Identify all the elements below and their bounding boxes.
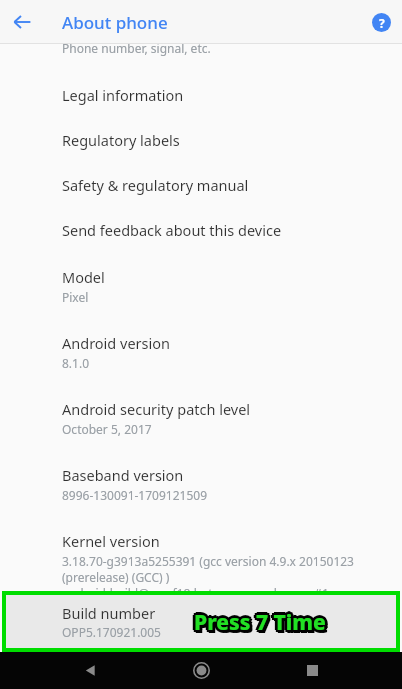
staticText: Android version (62, 333, 170, 353)
staticText: android-build@wpef18.hot.corp.google.com… (62, 585, 329, 601)
button[interactable]: Send feedback about this device (0, 207, 402, 252)
button[interactable]: Back (0, 0, 44, 44)
staticText: Press 7 Time (194, 611, 326, 640)
staticText: Press 7 Time (196, 608, 328, 637)
staticText: Press 7 Time (197, 611, 329, 640)
staticText: Press 7 Time (197, 608, 329, 637)
staticText: Pixel (62, 289, 89, 305)
staticText: Press 7 Time (196, 610, 328, 639)
staticText: Wed Sep 20 20:50:09 UTC 2017 (62, 601, 235, 617)
staticText: Phone number, signal, etc. (62, 40, 211, 56)
staticText: Press 7 Time (194, 606, 326, 635)
button[interactable]: Android security patch level (0, 390, 402, 446)
staticText: Kernel version (62, 531, 160, 551)
staticText: 8996-130091-1709121509 (62, 487, 208, 503)
staticText: Press 7 Time (194, 610, 326, 639)
staticText: Legal information (62, 85, 184, 105)
button[interactable]: Baseband version (0, 456, 402, 512)
staticText: Press 7 Time (194, 608, 326, 637)
staticText: Send feedback about this device (62, 220, 282, 240)
button[interactable]: Regulatory labels (0, 117, 402, 162)
staticText: OPP5.170921.005 (62, 624, 161, 640)
button[interactable]: Help (362, 2, 400, 42)
staticText: 3.18.70-g3913a5255391 (gcc version 4.9.x… (62, 553, 354, 569)
staticText: Press 7 Time (191, 608, 323, 637)
button[interactable]: Safety & regulatory manual (0, 162, 402, 207)
staticText: Press 7 Time (196, 606, 328, 635)
staticText: Baseband version (62, 465, 184, 485)
staticText: Press 7 Time (192, 606, 324, 635)
staticText: ? (379, 15, 385, 31)
button[interactable]: Legal information (0, 72, 402, 117)
staticText: (prerelease) (GCC) ) (62, 569, 170, 585)
staticText: Press 7 Time (192, 610, 324, 639)
staticText: Model (62, 267, 105, 287)
staticText: Regulatory labels (62, 130, 180, 150)
button[interactable]: Build number (6, 595, 396, 648)
staticText: Press 7 Time (192, 608, 324, 637)
staticText: Android security patch level (62, 399, 251, 419)
button[interactable]: Kernel version (0, 522, 402, 626)
staticText: October 5, 2017 (62, 421, 152, 437)
button[interactable]: Home (177, 652, 225, 689)
button[interactable]: Recent apps (290, 652, 334, 689)
staticText: About phone (62, 11, 168, 34)
staticText: Press 7 Time (194, 605, 326, 634)
button[interactable]: Model (0, 258, 402, 314)
staticText: 8.1.0 (62, 355, 90, 371)
button[interactable]: Back (68, 652, 112, 689)
button[interactable]: Android version (0, 324, 402, 380)
staticText: Build number (62, 603, 156, 623)
staticText: Safety & regulatory manual (62, 175, 249, 195)
